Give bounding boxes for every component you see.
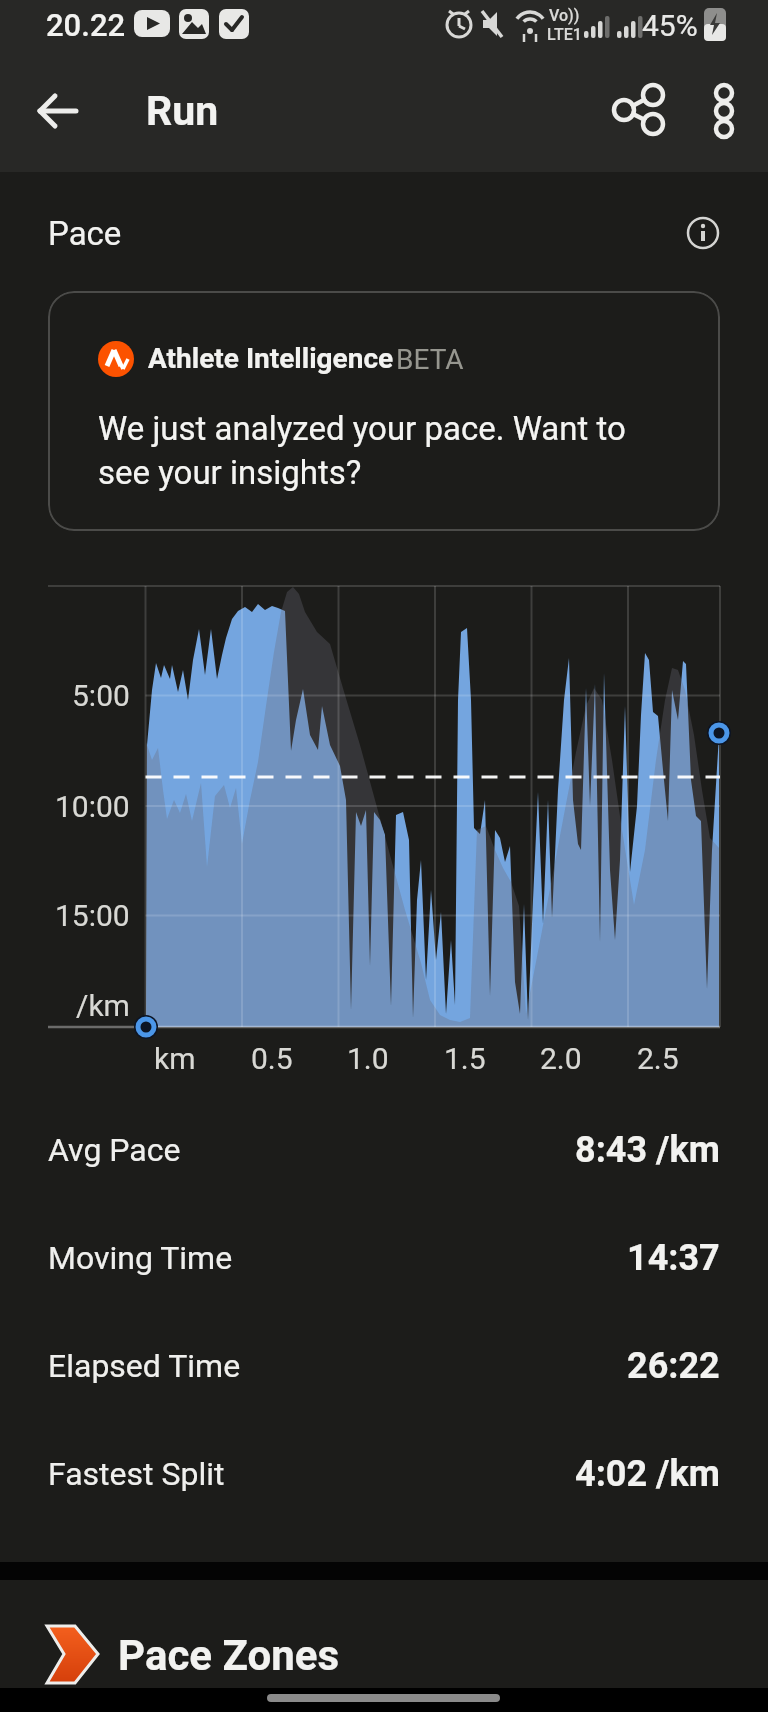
button[interactable]: Fastest Split xyxy=(48,1420,720,1528)
button[interactable] xyxy=(696,80,752,142)
staticText: km xyxy=(154,1041,196,1076)
button[interactable]: Avg Pace xyxy=(48,1096,720,1204)
staticText: 0.5 xyxy=(251,1041,293,1076)
staticText: LTE1 xyxy=(547,25,582,44)
staticText: 2.5 xyxy=(637,1041,679,1076)
staticText: 4:02 /km xyxy=(575,1453,720,1495)
button[interactable]: Pace Zones xyxy=(44,1600,724,1710)
button[interactable]: Moving Time xyxy=(48,1204,720,1312)
staticText: Pace xyxy=(48,214,122,253)
staticText: 45% xyxy=(642,8,698,43)
staticText: Run xyxy=(146,87,219,135)
button[interactable]: Athlete Intelligence xyxy=(48,291,720,531)
staticText: We just analyzed your pace. Want to xyxy=(98,409,626,448)
staticText: see your insights? xyxy=(98,453,362,492)
button[interactable] xyxy=(680,210,726,256)
staticText: 26:22 xyxy=(627,1345,720,1387)
staticText: 1.5 xyxy=(444,1041,486,1076)
staticText: 10:00 xyxy=(55,789,130,824)
staticText: BETA xyxy=(396,343,464,376)
staticText: Elapsed Time xyxy=(48,1347,241,1385)
staticText: Avg Pace xyxy=(48,1131,181,1169)
staticText: 2.0 xyxy=(540,1041,582,1076)
staticText: Fastest Split xyxy=(48,1455,225,1493)
staticText: 1.0 xyxy=(347,1041,389,1076)
staticText: Moving Time xyxy=(48,1239,233,1277)
staticText: 15:00 xyxy=(55,898,130,933)
staticText: Athlete Intelligence xyxy=(148,342,394,375)
staticText: Vo)) xyxy=(549,6,580,25)
staticText: 20.22 xyxy=(46,7,126,43)
staticText: 8:43 /km xyxy=(575,1129,720,1171)
button[interactable]: Elapsed Time xyxy=(48,1312,720,1420)
staticText: Pace Zones xyxy=(118,1631,340,1680)
staticText: /km xyxy=(76,988,130,1023)
button[interactable] xyxy=(608,80,670,142)
button[interactable] xyxy=(28,82,86,140)
staticText: 5:00 xyxy=(72,678,130,713)
staticText: 14:37 xyxy=(627,1237,720,1279)
